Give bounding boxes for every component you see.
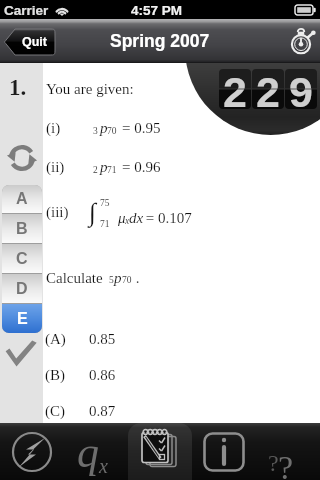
staticText: (i): [46, 120, 61, 137]
staticText: 2: [223, 69, 247, 108]
staticText: (A): [45, 331, 66, 348]
staticText: ?: [278, 449, 294, 480]
staticText: 0.87: [89, 403, 116, 420]
staticText: C: [16, 250, 28, 268]
button[interactable]: Formula sheet: [64, 423, 128, 480]
staticText: dx: [129, 210, 144, 227]
staticText: 2: [93, 165, 98, 176]
button[interactable]: Exam questions: [128, 423, 192, 480]
staticText: μ: [118, 210, 126, 227]
staticText: q: [77, 428, 99, 477]
button[interactable]: B: [2, 214, 42, 243]
staticText: (ii): [46, 159, 65, 176]
staticText: Carrier: [4, 3, 49, 18]
staticText: = 0.95: [122, 120, 161, 137]
staticText: B: [16, 220, 28, 238]
button[interactable]: C: [2, 244, 42, 273]
staticText: 75: [100, 198, 110, 209]
staticText: .: [132, 270, 140, 287]
staticText: x: [125, 216, 130, 227]
staticText: D: [16, 280, 28, 298]
staticText: 5: [109, 275, 114, 286]
button[interactable]: A: [2, 185, 42, 213]
staticText: E: [17, 310, 28, 328]
staticText: Quit: [22, 35, 47, 49]
staticText: 0.86: [89, 367, 116, 384]
staticText: p: [114, 270, 122, 287]
button[interactable]: Info: [192, 423, 256, 480]
staticText: ?: [268, 450, 279, 477]
staticText: = 0.107: [142, 210, 192, 227]
button[interactable]: Help: [256, 423, 320, 480]
button[interactable]: Shuffle: [5, 144, 39, 172]
staticText: 3: [93, 126, 98, 137]
staticText: 71: [100, 219, 110, 230]
button[interactable]: Check answer: [5, 340, 37, 368]
button[interactable]: Quit: [4, 29, 55, 55]
staticText: 2: [256, 69, 280, 108]
staticText: 71: [107, 165, 117, 176]
button[interactable]: E: [2, 304, 42, 333]
button[interactable]: D: [2, 274, 42, 303]
staticText: p: [100, 159, 108, 176]
staticText: A: [16, 190, 28, 208]
staticText: 0.85: [89, 331, 116, 348]
staticText: 9: [289, 69, 313, 108]
staticText: Calculate: [46, 270, 103, 287]
staticText: Spring 2007: [110, 31, 210, 51]
staticText: p: [100, 120, 108, 137]
button[interactable]: Flash cards: [0, 423, 64, 480]
staticText: You are given:: [46, 81, 134, 98]
staticText: 4:57 PM: [131, 3, 183, 18]
button[interactable]: Timer: [285, 26, 317, 58]
staticText: 1.: [9, 75, 27, 100]
staticText: (B): [45, 367, 65, 384]
staticText: = 0.96: [122, 159, 161, 176]
staticText: (iii): [46, 204, 69, 221]
staticText: 70: [122, 275, 132, 286]
staticText: (C): [45, 403, 65, 420]
staticText: x: [99, 455, 108, 477]
staticText: 70: [107, 126, 117, 137]
staticText: ∫: [89, 198, 97, 227]
